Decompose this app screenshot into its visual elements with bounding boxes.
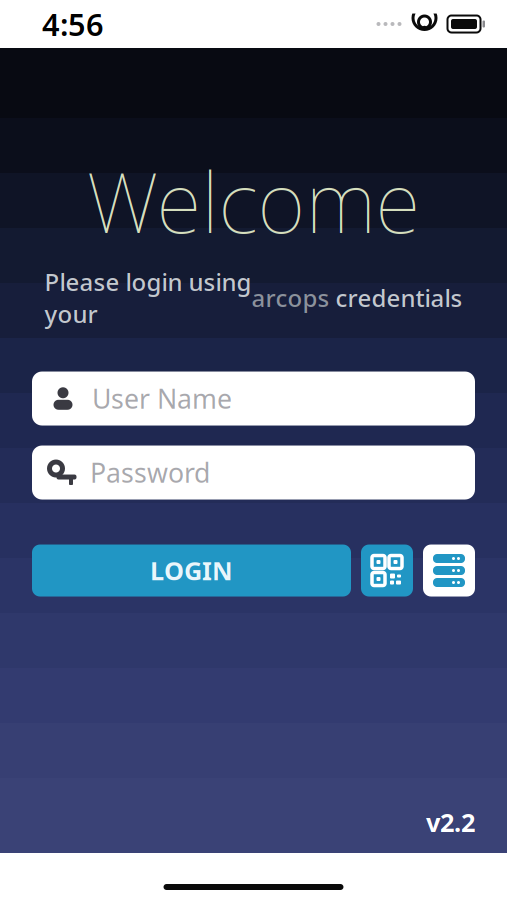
- staticText: credentials: [329, 282, 462, 314]
- staticText: Please login using your: [44, 266, 251, 329]
- staticText: arcops: [251, 282, 329, 314]
- staticText: LOGIN: [150, 554, 233, 587]
- button[interactable]: Server settings: [423, 544, 475, 596]
- staticText: User Name: [92, 381, 232, 416]
- button[interactable]: User Name: [32, 371, 475, 425]
- button[interactable]: Scan QR code: [361, 544, 413, 596]
- staticText: Welcome: [86, 146, 420, 256]
- staticText: 4:56: [42, 4, 104, 44]
- button[interactable]: Password: [32, 445, 475, 499]
- staticText: Password: [90, 455, 210, 490]
- button[interactable]: LOGIN: [32, 544, 351, 596]
- staticText: v2.2: [426, 805, 475, 839]
